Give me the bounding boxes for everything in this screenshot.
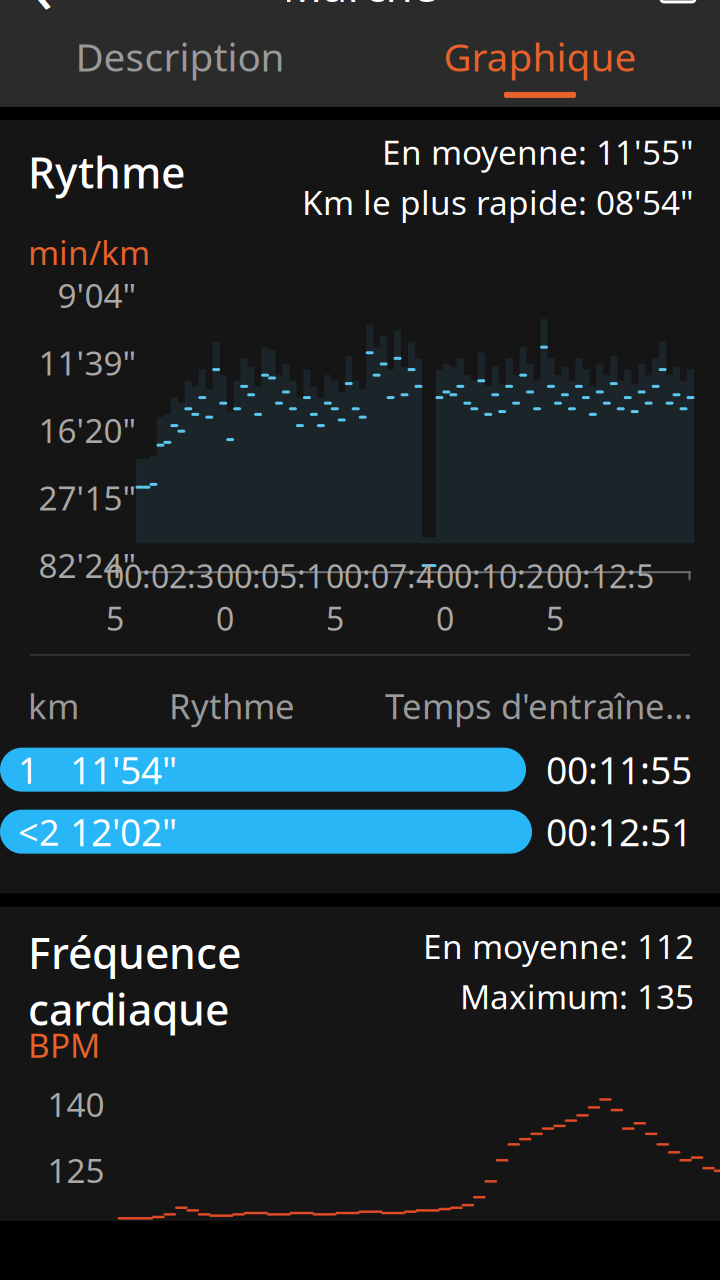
staticText: Description (75, 31, 284, 82)
button[interactable]: Graphique (360, 21, 720, 107)
staticText: 12'02" (70, 807, 177, 856)
button[interactable]: Back (0, 0, 84, 20)
staticText: 11'54" (70, 745, 177, 794)
staticText: Fréquence cardiaque (28, 924, 241, 1037)
button[interactable]: <2 (0, 806, 720, 858)
staticText: 00:12:55 (546, 555, 654, 640)
staticText: 00:07:45 (326, 555, 434, 640)
button[interactable]: 1 (0, 744, 720, 796)
staticText: 00:10:20 (436, 555, 544, 640)
staticText: 27'15" (38, 476, 136, 520)
staticText: min/km (28, 230, 150, 274)
staticText: 125 (47, 1148, 104, 1192)
button[interactable]: Description (0, 21, 360, 107)
staticText: 9'04" (57, 273, 136, 317)
staticText: 11'39" (38, 341, 136, 385)
staticText: 1 (18, 746, 39, 794)
staticText: ‹ (30, 0, 53, 34)
staticText: ↗ (667, 0, 701, 1)
staticText: 00:05:10 (216, 555, 324, 640)
staticText: Km le plus rapide: 08'54" (302, 180, 694, 224)
staticText: BPM (28, 1023, 100, 1067)
staticText: En moyenne: 11'55" (382, 130, 694, 174)
staticText: <2 (18, 808, 60, 856)
staticText: Rythme (28, 144, 185, 200)
staticText: 00:12:51 (546, 807, 692, 856)
staticText: En moyenne: 112 (423, 924, 694, 968)
staticText: Temps d'entraîne… (385, 683, 692, 729)
staticText: Graphique (443, 31, 636, 82)
staticText: 140 (47, 1082, 104, 1126)
staticText: 00:11:55 (546, 745, 692, 794)
staticText: 16'20" (38, 408, 136, 452)
staticText: Marche (282, 0, 437, 14)
staticText: 82'24" (38, 543, 136, 587)
staticText: Rythme (169, 683, 295, 729)
staticText: km (28, 683, 79, 729)
staticText: Maximum: 135 (460, 974, 694, 1019)
button[interactable]: Share (636, 0, 720, 20)
staticText: 00:02:35 (106, 555, 214, 640)
